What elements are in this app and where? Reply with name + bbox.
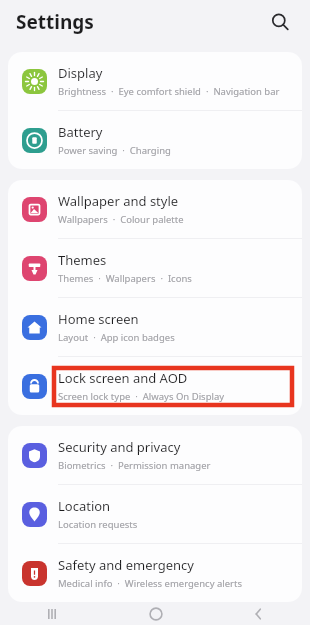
staticText: Medical info · Wireless emergency alerts (58, 577, 243, 590)
staticText: Brightness · Eye comfort shield · Naviga… (58, 85, 280, 98)
staticText: Biometrics · Permission manager (58, 459, 211, 472)
staticText: Themes · Wallpapers · Icons (58, 272, 192, 285)
button[interactable]: Security and privacy (8, 426, 302, 484)
staticText: Safety and emergency (58, 556, 194, 574)
staticText: Themes (58, 251, 107, 269)
staticText: Layout · App icon badges (58, 331, 175, 344)
button[interactable]: Wallpaper and style (8, 180, 302, 238)
button[interactable]: Home (104, 602, 207, 625)
staticText: Battery (58, 123, 103, 141)
button[interactable]: Recents (0, 602, 104, 625)
staticText: Wallpapers · Colour palette (58, 213, 184, 226)
button[interactable]: Search (266, 8, 294, 36)
button[interactable]: Display (8, 52, 302, 110)
staticText: Home screen (58, 310, 139, 328)
button[interactable]: Home screen (8, 298, 302, 356)
staticText: Lock screen and AOD (58, 369, 188, 387)
staticText: Power saving · Charging (58, 144, 171, 157)
button[interactable]: Location (8, 485, 302, 543)
button[interactable]: Lock screen and AOD (8, 357, 302, 415)
button[interactable]: Back (207, 602, 310, 625)
staticText: Location requests (58, 518, 138, 531)
button[interactable]: Themes (8, 239, 302, 297)
staticText: Screen lock type · Always On Display (58, 390, 225, 403)
staticText: Security and privacy (58, 438, 181, 456)
staticText: Wallpaper and style (58, 192, 179, 210)
button[interactable]: Battery (8, 111, 302, 169)
staticText: Location (58, 497, 111, 515)
staticText: Settings (16, 9, 94, 35)
staticText: Display (58, 64, 103, 82)
button[interactable]: Safety and emergency (8, 544, 302, 602)
